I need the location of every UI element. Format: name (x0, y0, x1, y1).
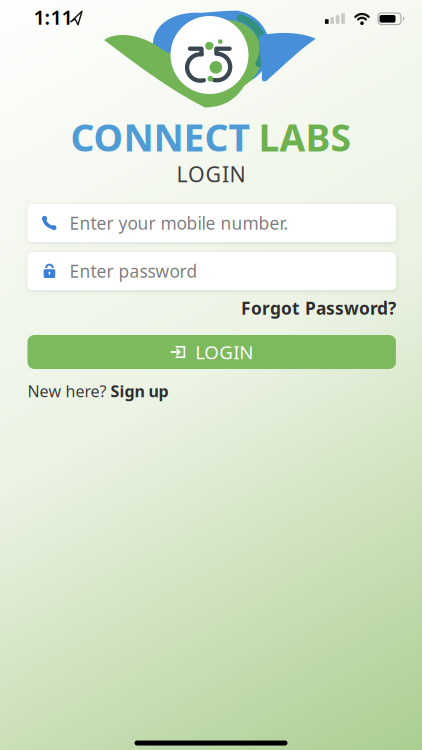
button[interactable]: Sign up (110, 380, 168, 402)
staticText: 1:11 (33, 4, 72, 30)
staticText: Sign up (110, 380, 168, 402)
staticText: CONNECT (70, 112, 250, 162)
button[interactable]: Enter your mobile number. (27, 204, 396, 242)
button[interactable]: Enter password (27, 252, 396, 290)
staticText: Enter password (69, 259, 197, 282)
button[interactable]: Forgot Password? (241, 296, 396, 319)
staticText: New here? (27, 380, 106, 402)
staticText: Forgot Password? (241, 296, 396, 319)
staticText: LABS (258, 112, 351, 162)
staticText: LOGIN (176, 160, 245, 188)
button[interactable]: LOGIN (27, 335, 396, 369)
staticText: Enter your mobile number. (69, 211, 288, 234)
staticText: LOGIN (195, 340, 253, 364)
